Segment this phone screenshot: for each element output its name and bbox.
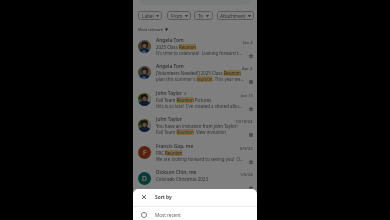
staticText: this is so late! I've created a shared a… (156, 103, 244, 109)
button[interactable]: Options (249, 80, 253, 84)
button[interactable]: To (194, 11, 213, 20)
staticText: F (143, 148, 147, 157)
staticText: Apr 2 (242, 66, 253, 72)
button[interactable]: Star (249, 54, 253, 58)
staticText: Attachment (220, 13, 246, 19)
staticText: John Taylor (156, 90, 182, 97)
button[interactable]: John Taylor (133, 116, 257, 142)
staticText: Fall Team Reunion Pictures (156, 97, 212, 103)
staticText: 10/18/24 (235, 119, 253, 125)
staticText: Francis Gap, me (156, 143, 194, 150)
staticText: Most relevant (138, 27, 163, 32)
staticText: John Taylor (156, 116, 182, 123)
staticText: From (171, 13, 183, 19)
staticText: Fall Team Reunion View invitation (156, 129, 226, 135)
button[interactable]: Star (249, 186, 253, 190)
staticText: 8/9/23 (240, 146, 253, 152)
button[interactable]: Close (133, 189, 257, 205)
button[interactable]: Most relevant (138, 25, 168, 33)
button[interactable]: John Taylor (133, 90, 257, 116)
button[interactable]: Angela Tom (133, 63, 257, 89)
staticText: FBC Reunion (156, 150, 183, 156)
button[interactable]: D (133, 169, 257, 195)
staticText: You have an invitation from John Taylor! (156, 123, 238, 129)
button[interactable]: Star (249, 107, 253, 111)
button[interactable]: Attachment (217, 11, 254, 20)
button[interactable]: Options (249, 133, 253, 137)
staticText: plan this summer's reunion. This year we… (156, 76, 244, 82)
staticText: Colorado Christmas 2023 (156, 176, 208, 182)
staticText: Angela Tom (156, 37, 184, 44)
button[interactable]: Most recent (133, 210, 257, 220)
staticText: 2025 Class Reunion (156, 44, 197, 50)
staticText: We are looking forward to seeing you! Ou… (156, 156, 244, 162)
staticText: Label (142, 13, 154, 19)
button[interactable]: F (133, 143, 257, 169)
button[interactable]: Label (138, 11, 162, 20)
other: Close (133, 189, 155, 205)
button[interactable]: From (167, 11, 191, 20)
button[interactable]: Star (249, 160, 253, 164)
staticText: To (198, 13, 204, 19)
staticText: Most recent (155, 212, 181, 218)
staticText: D (142, 174, 147, 183)
staticText: Dickson Chin, me (156, 169, 197, 176)
staticText: Sort by (155, 194, 172, 201)
button[interactable]: Angela Tom (133, 37, 257, 63)
staticText: 2 (184, 91, 187, 97)
staticText: 1/6/24 (240, 172, 253, 178)
staticText: Jan 4 (243, 40, 253, 46)
staticText: Jan 15 (241, 93, 253, 99)
staticText: Angela Tom (156, 63, 184, 70)
staticText: [Volunteers Needed!] 2025 Class Reunion (156, 70, 241, 76)
staticText: It's time to celebrate! Looking forward … (156, 50, 244, 56)
